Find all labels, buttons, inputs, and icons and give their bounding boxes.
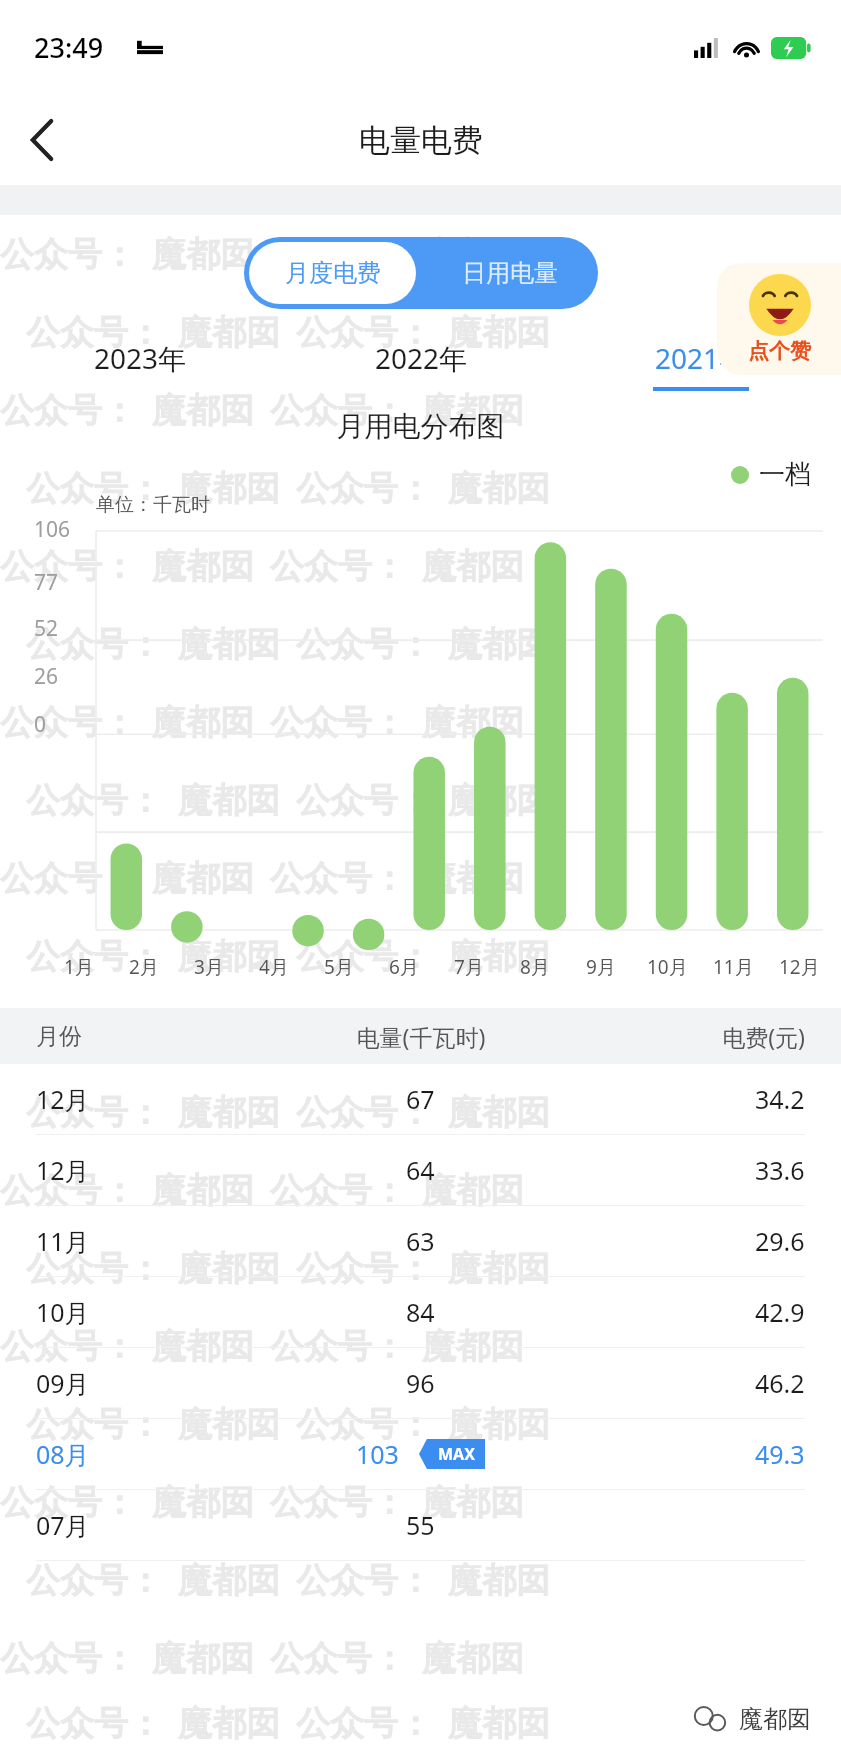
staticText: 49.3	[755, 1437, 805, 1471]
staticText: 公众号：	[296, 1702, 432, 1745]
staticText: 公众号：	[26, 935, 162, 978]
staticText: 魔都囡	[739, 1704, 811, 1734]
staticText: 10月	[36, 1295, 90, 1329]
staticText: 日用电量	[462, 258, 558, 288]
button[interactable]: 11月	[0, 1206, 841, 1277]
staticText: 公众号：	[270, 1169, 406, 1212]
staticText: 3月	[194, 954, 224, 980]
staticText: 0	[34, 710, 47, 739]
staticText: 公众号：	[0, 1013, 136, 1056]
staticText: 公众号：	[270, 545, 406, 588]
button[interactable]: 2021年	[561, 331, 841, 399]
staticText: 公众号：	[0, 389, 136, 432]
staticText: 公众号：	[26, 1559, 162, 1602]
button[interactable]: 09月	[0, 1348, 841, 1419]
staticText: 魔都囡	[178, 779, 280, 822]
staticText: 12月	[36, 1082, 90, 1116]
button[interactable]: Back	[0, 98, 84, 182]
staticText: 11月	[713, 954, 754, 980]
staticText: 魔都囡	[448, 467, 550, 510]
staticText: 魔都囡	[178, 1091, 280, 1134]
staticText: 公众号：	[270, 1637, 406, 1680]
staticText: 魔都囡	[152, 545, 254, 588]
staticText: 公众号：	[270, 1481, 406, 1524]
staticText: 公众号：	[0, 545, 136, 588]
staticText: 公众号：	[270, 1325, 406, 1368]
staticText: 7月	[454, 954, 484, 980]
button[interactable]: 12月	[0, 1064, 841, 1135]
staticText: 10月	[647, 954, 688, 980]
staticText: 公众号：	[0, 1325, 136, 1368]
staticText: 8月	[520, 954, 550, 980]
staticText: 77	[34, 568, 59, 597]
staticText: 9月	[586, 954, 616, 980]
staticText: 4月	[259, 954, 289, 980]
staticText: 公众号：	[296, 1403, 432, 1446]
staticText: 64	[406, 1153, 435, 1187]
staticText: 公众号：	[270, 701, 406, 744]
staticText: 魔都囡	[422, 545, 524, 588]
staticText: 公众号：	[26, 779, 162, 822]
staticText: 魔都囡	[152, 233, 254, 276]
button[interactable]: 2023年	[0, 331, 281, 399]
staticText: 魔都囡	[448, 779, 550, 822]
button[interactable]: 日用电量	[421, 237, 598, 309]
staticText: 魔都囡	[152, 1637, 254, 1680]
staticText: 公众号：	[26, 1091, 162, 1134]
staticText: 公众号：	[26, 1403, 162, 1446]
staticText: 12月	[779, 954, 820, 980]
staticText: 公众号：	[0, 701, 136, 744]
staticText: 魔都囡	[422, 701, 524, 744]
staticText: 魔都囡	[152, 1169, 254, 1212]
staticText: 魔都囡	[448, 1702, 550, 1745]
button[interactable]: 10月	[0, 1277, 841, 1348]
button[interactable]: 点个赞	[717, 263, 841, 375]
staticText: 月度电费	[285, 258, 381, 288]
staticText: 2021年	[655, 339, 748, 377]
staticText: 103	[356, 1437, 399, 1471]
staticText: 魔都囡	[152, 1325, 254, 1368]
staticText: 公众号：	[0, 1637, 136, 1680]
staticText: 一档	[759, 458, 811, 491]
staticText: 魔都囡	[448, 623, 550, 666]
staticText: 魔都囡	[178, 311, 280, 354]
button[interactable]: 07月	[0, 1490, 841, 1561]
staticText: 84	[406, 1295, 435, 1329]
staticText: 魔都囡	[422, 233, 524, 276]
staticText: 魔都囡	[448, 935, 550, 978]
staticText: 魔都囡	[422, 857, 524, 900]
button[interactable]: 08月	[0, 1419, 841, 1490]
staticText: 魔都囡	[178, 623, 280, 666]
button[interactable]: 月度电费	[249, 242, 416, 304]
staticText: 公众号：	[0, 857, 136, 900]
staticText: 公众号：	[26, 311, 162, 354]
staticText: 公众号：	[296, 779, 432, 822]
button[interactable]: 2022年	[281, 331, 561, 399]
staticText: 2023年	[94, 339, 187, 377]
staticText: 公众号：	[270, 1013, 406, 1056]
staticText: 23:49	[34, 29, 104, 66]
staticText: 公众号：	[270, 389, 406, 432]
staticText: 魔都囡	[152, 701, 254, 744]
staticText: 魔都囡	[178, 935, 280, 978]
staticText: 2月	[129, 954, 159, 980]
staticText: 魔都囡	[178, 1247, 280, 1290]
staticText: 月用电分布图	[0, 409, 841, 444]
staticText: 1月	[64, 954, 94, 980]
staticText: 公众号：	[0, 1481, 136, 1524]
staticText: 29.6	[755, 1224, 805, 1258]
staticText: 魔都囡	[448, 1403, 550, 1446]
staticText: 魔都囡	[448, 1559, 550, 1602]
staticText: 电量电费	[359, 121, 483, 160]
button[interactable]: 12月	[0, 1135, 841, 1206]
staticText: 07月	[36, 1508, 90, 1542]
staticText: 公众号：	[296, 311, 432, 354]
staticText: 2022年	[375, 339, 468, 377]
staticText: 魔都囡	[152, 1481, 254, 1524]
staticText: 魔都囡	[178, 1559, 280, 1602]
staticText: 单位：千瓦时	[96, 493, 210, 517]
staticText: 魔都囡	[448, 1247, 550, 1290]
staticText: 11月	[36, 1224, 90, 1258]
staticText: 公众号：	[270, 857, 406, 900]
staticText: 魔都囡	[178, 1702, 280, 1745]
